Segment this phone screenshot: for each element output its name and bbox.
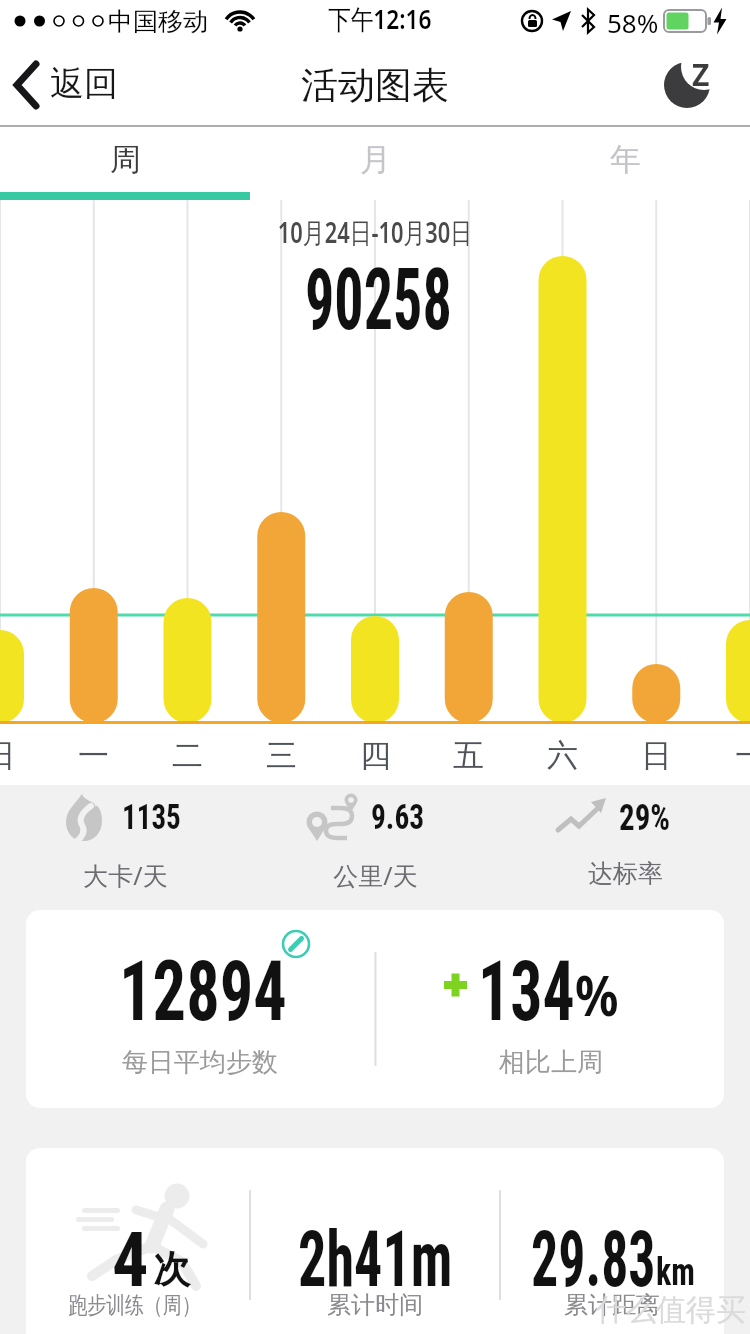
staticText: 中国移动 — [108, 6, 208, 37]
staticText: 返回 — [50, 62, 118, 105]
staticText: 五 — [453, 736, 484, 775]
staticText: 9.63 — [371, 797, 425, 838]
staticText: 什么值得买 — [596, 1291, 746, 1329]
staticText: 10月24日-10月30日 — [277, 213, 472, 251]
staticText: Z — [692, 54, 710, 95]
button[interactable] — [26, 910, 724, 1108]
button[interactable] — [520, 790, 730, 905]
staticText: 达标率 — [588, 858, 663, 889]
staticText: 二 — [172, 736, 203, 775]
staticText: 一 — [78, 736, 109, 775]
button[interactable] — [270, 790, 480, 905]
staticText: 累计时间 — [327, 1290, 423, 1320]
staticText: 公里/天 — [333, 858, 418, 892]
staticText: 日 — [641, 736, 672, 775]
button[interactable] — [26, 1148, 724, 1334]
button[interactable]: 月 — [250, 127, 500, 192]
staticText: 次 — [153, 1246, 190, 1293]
staticText: 跑步训练（周） — [68, 1291, 200, 1320]
staticText: % — [575, 956, 619, 1032]
button[interactable]: 返回 — [0, 48, 150, 120]
staticText: 一 — [735, 736, 750, 775]
staticText: 三 — [266, 736, 297, 775]
staticText: 90258 — [305, 249, 452, 350]
staticText: 相比上周 — [499, 1046, 603, 1079]
staticText: 活动图表 — [301, 62, 449, 109]
staticText: 4 — [112, 1215, 149, 1304]
staticText: km — [656, 1250, 695, 1295]
staticText: 下午12:16 — [328, 0, 432, 37]
staticText: 四 — [360, 736, 391, 775]
staticText: 大卡/天 — [83, 858, 168, 892]
staticText: 周 — [110, 140, 141, 179]
button[interactable] — [20, 790, 230, 905]
staticText: 日 — [0, 736, 16, 775]
staticText: 2h41m — [298, 1214, 453, 1305]
staticText: 12894 — [119, 942, 287, 1040]
staticText: 年 — [610, 140, 641, 179]
staticText: 29% — [619, 797, 671, 839]
staticText: 累计距离 — [564, 1290, 660, 1320]
button[interactable]: 周 — [0, 127, 250, 192]
staticText: 每日平均步数 — [122, 1046, 278, 1079]
button[interactable]: 年 — [500, 127, 750, 192]
staticText: 134 — [478, 942, 575, 1040]
button[interactable]: Z — [650, 48, 730, 118]
staticText: 月 — [360, 140, 391, 179]
staticText: 1135 — [122, 797, 181, 838]
staticText: 六 — [547, 736, 578, 775]
staticText: 29.83 — [531, 1214, 656, 1305]
staticText: 58% — [607, 5, 659, 40]
